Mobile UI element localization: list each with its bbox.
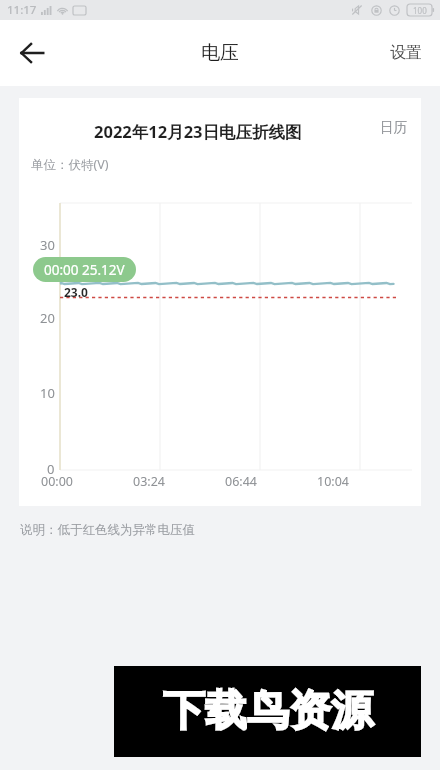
staticText: 06:44 [225,473,257,490]
button[interactable]: 日历 [370,114,417,141]
staticText: 0 [47,460,55,478]
staticText: 00:00 [41,473,73,490]
staticText: 30 [40,236,55,254]
staticText: 下载鸟资源 [163,685,373,738]
button[interactable]: Back [8,29,56,77]
staticText: 日历 [380,119,407,136]
staticText: 10 [40,384,55,402]
staticText: 100 [413,5,427,16]
button[interactable]: 设置 [378,33,434,73]
staticText: 电压 [201,41,239,65]
staticText: 23.0 [64,284,88,300]
staticText: 20 [40,309,55,327]
staticText: 说明：低于红色线为异常电压值 [20,522,195,538]
staticText: 00:00 25.12V [44,261,125,279]
staticText: 设置 [390,43,422,63]
staticText: 03:24 [133,473,165,490]
staticText: 单位：伏特(V) [31,156,109,173]
staticText: 10:04 [317,473,349,490]
button[interactable]: 00:00 25.12V [33,257,136,282]
staticText: 11:17 [7,2,37,18]
staticText: 2022年12月23日电压折线图 [94,120,302,143]
